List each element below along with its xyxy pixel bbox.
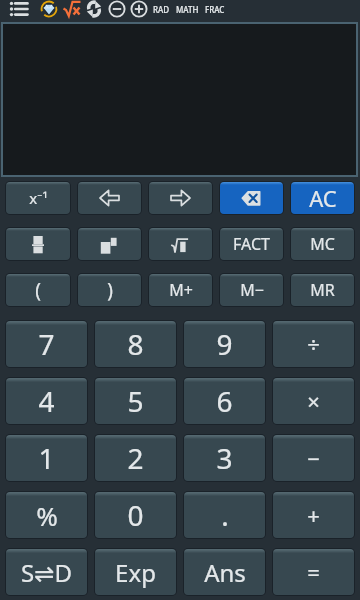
button[interactable]: ÷ bbox=[273, 321, 354, 367]
staticText: 2 bbox=[127, 439, 144, 477]
button[interactable]: 5 bbox=[95, 378, 176, 424]
button[interactable]: History bbox=[9, 0, 29, 18]
button[interactable]: M+ bbox=[149, 274, 212, 306]
button[interactable]: Cursor right bbox=[149, 182, 212, 214]
button[interactable]: x⁻¹ bbox=[6, 182, 70, 214]
staticText: ÷ bbox=[307, 329, 320, 359]
staticText: 8 bbox=[127, 325, 144, 363]
button[interactable]: Cursor left bbox=[78, 182, 141, 214]
staticText: 0 bbox=[127, 496, 144, 534]
button[interactable]: 8 bbox=[95, 321, 176, 367]
button[interactable]: 7 bbox=[6, 321, 87, 367]
button[interactable]: 4 bbox=[6, 378, 87, 424]
button[interactable]: Swap bbox=[84, 0, 104, 18]
staticText: MR bbox=[310, 279, 335, 301]
staticText: Exp bbox=[115, 556, 156, 589]
button[interactable]: S⇌D bbox=[6, 549, 87, 595]
staticText: 6 bbox=[216, 382, 233, 420]
button[interactable]: MATH bbox=[176, 4, 199, 15]
button[interactable]: Delete bbox=[220, 182, 283, 214]
button[interactable]: FRAC bbox=[205, 4, 225, 15]
button[interactable] bbox=[1, 22, 358, 177]
button[interactable]: . bbox=[184, 492, 265, 538]
staticText: MC bbox=[310, 233, 335, 255]
staticText: + bbox=[307, 500, 320, 530]
staticText: 9 bbox=[216, 325, 233, 363]
staticText: S⇌D bbox=[21, 556, 72, 589]
button[interactable]: Zoom out bbox=[107, 0, 127, 18]
button[interactable]: 1 bbox=[6, 435, 87, 481]
button[interactable]: % bbox=[6, 492, 87, 538]
button[interactable]: Ans bbox=[184, 549, 265, 595]
staticText: FACT bbox=[233, 233, 270, 255]
staticText: 5 bbox=[127, 382, 144, 420]
button[interactable]: 3 bbox=[184, 435, 265, 481]
button[interactable]: Square root bbox=[149, 228, 212, 260]
staticText: ) bbox=[107, 277, 113, 303]
button[interactable]: − bbox=[273, 435, 354, 481]
staticText: M+ bbox=[169, 279, 193, 301]
button[interactable]: FACT bbox=[220, 228, 283, 260]
button[interactable]: ) bbox=[78, 274, 141, 306]
button[interactable]: 2 bbox=[95, 435, 176, 481]
button[interactable]: Power bbox=[78, 228, 141, 260]
staticText: Ans bbox=[204, 556, 246, 589]
staticText: 3 bbox=[216, 439, 233, 477]
button[interactable]: AC bbox=[291, 182, 354, 214]
staticText: − bbox=[307, 443, 320, 473]
button[interactable]: ( bbox=[6, 274, 70, 306]
button[interactable]: Fraction bbox=[6, 228, 70, 260]
button[interactable]: MC bbox=[291, 228, 354, 260]
button[interactable]: = bbox=[273, 549, 354, 595]
button[interactable]: 9 bbox=[184, 321, 265, 367]
staticText: x⁻¹ bbox=[29, 188, 48, 208]
button[interactable]: Exp bbox=[95, 549, 176, 595]
staticText: . bbox=[221, 496, 229, 534]
button[interactable]: RAD bbox=[153, 4, 170, 15]
button[interactable]: Premium bbox=[39, 0, 59, 18]
staticText: = bbox=[307, 557, 320, 587]
button[interactable]: 0 bbox=[95, 492, 176, 538]
staticText: M− bbox=[240, 279, 264, 301]
button[interactable]: 6 bbox=[184, 378, 265, 424]
staticText: % bbox=[36, 498, 58, 533]
button[interactable]: + bbox=[273, 492, 354, 538]
staticText: × bbox=[307, 386, 320, 416]
staticText: 7 bbox=[38, 325, 55, 363]
button[interactable]: MR bbox=[291, 274, 354, 306]
button[interactable]: M− bbox=[220, 274, 283, 306]
staticText: ( bbox=[35, 277, 41, 303]
button[interactable]: Square root bbox=[62, 0, 82, 18]
button[interactable]: Zoom in bbox=[129, 0, 149, 18]
button[interactable]: × bbox=[273, 378, 354, 424]
staticText: AC bbox=[309, 183, 337, 213]
staticText: 1 bbox=[38, 439, 55, 477]
staticText: 4 bbox=[38, 382, 55, 420]
